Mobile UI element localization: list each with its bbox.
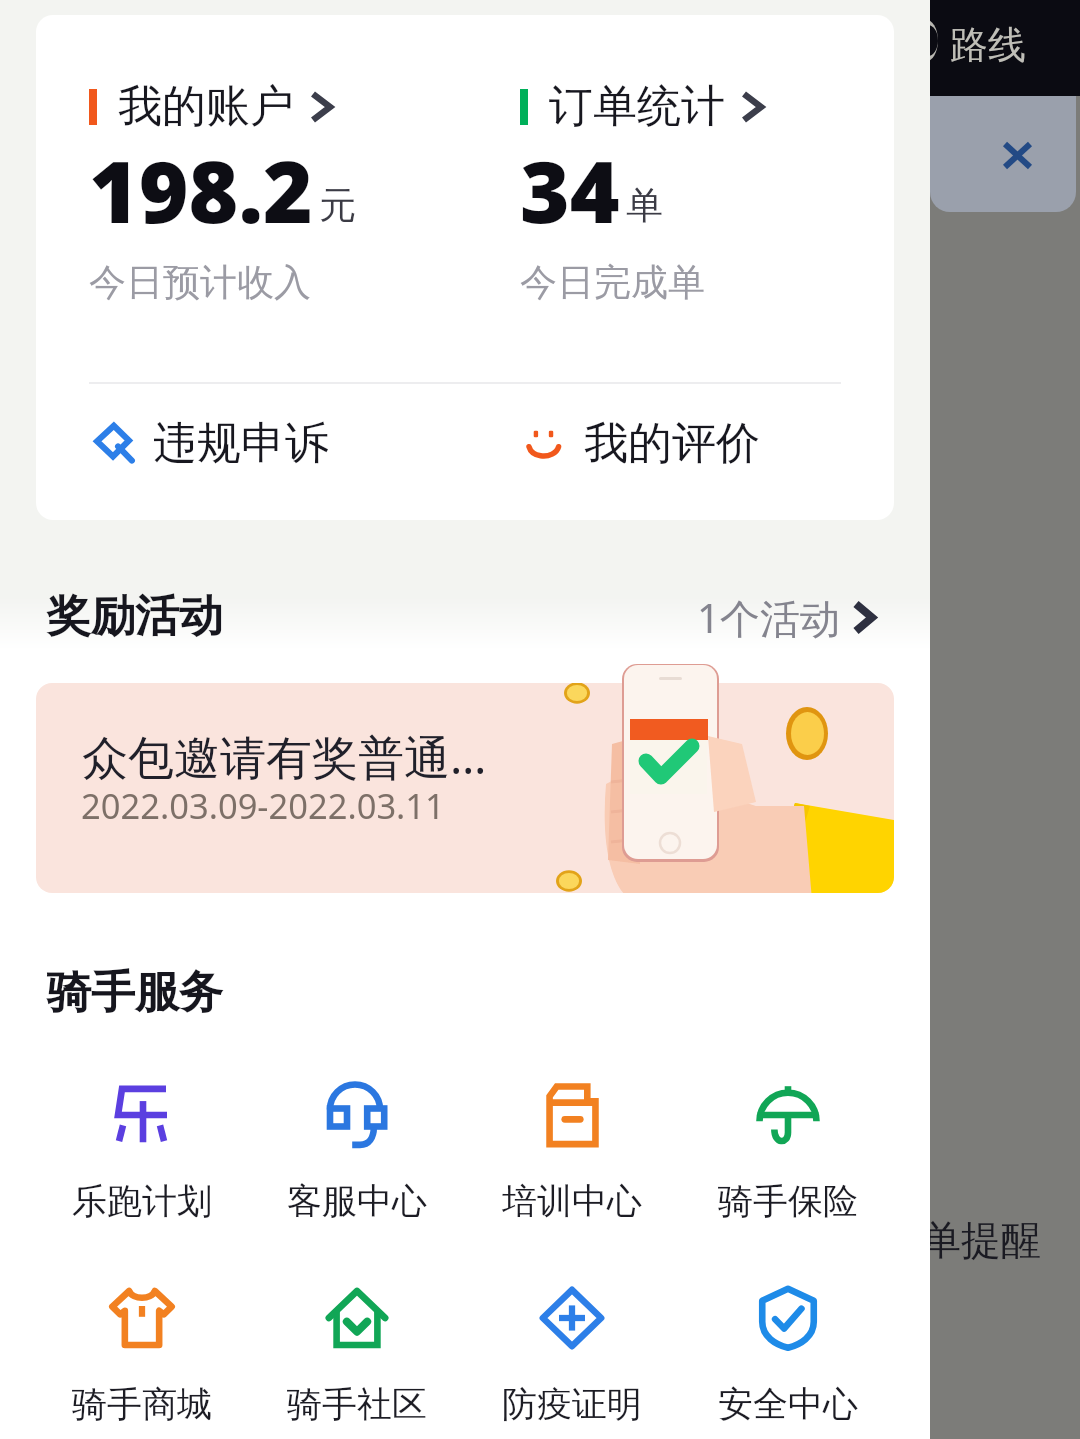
button[interactable]: 我的评价 — [523, 401, 893, 485]
staticText: 骑手保险 — [718, 1179, 858, 1223]
staticText: 骑手社区 — [287, 1382, 427, 1426]
staticText: 培训中心 — [502, 1179, 642, 1223]
button[interactable]: 客服中心 — [249, 1084, 464, 1223]
staticText: 34 — [520, 132, 620, 248]
button[interactable]: 骑手商城 — [34, 1287, 249, 1426]
button[interactable]: 防疫证明 — [464, 1287, 680, 1426]
staticText: 乐跑计划 — [72, 1179, 212, 1223]
staticText: 奖励活动 — [47, 589, 223, 644]
button[interactable]: 订单统计 — [520, 15, 894, 345]
staticText: 骑手服务 — [47, 965, 223, 1020]
staticText: 198.2 — [89, 132, 313, 248]
staticText: 1个活动 — [697, 590, 840, 645]
staticText: 我的评价 — [584, 416, 760, 471]
staticText: 违规申诉 — [153, 416, 329, 471]
staticText: 订单统计 — [549, 79, 725, 134]
button[interactable]: 骑手社区 — [249, 1287, 464, 1426]
button[interactable]: 骑手保险 — [680, 1084, 896, 1223]
staticText: 安全中心 — [718, 1382, 858, 1426]
staticText: 今日完成单 — [520, 259, 705, 306]
button[interactable]: 众包邀请有奖普通… — [36, 683, 894, 893]
button[interactable]: 1个活动 — [697, 590, 872, 645]
staticText: 我的账户 — [118, 79, 294, 134]
staticText: 2022.03.09-2022.03.11 — [81, 782, 445, 829]
staticText: 众包邀请有奖普通… — [82, 725, 487, 788]
button[interactable]: 乐跑计划 — [34, 1084, 249, 1223]
button[interactable]: 违规申诉 — [92, 401, 462, 485]
button[interactable]: 我的账户 — [89, 15, 479, 345]
staticText: 今日预计收入 — [89, 259, 311, 306]
staticText: 客服中心 — [287, 1179, 427, 1223]
staticText: 骑手商城 — [72, 1382, 212, 1426]
button[interactable]: Close — [978, 117, 1057, 194]
staticText: 防疫证明 — [502, 1382, 642, 1426]
button[interactable]: 安全中心 — [680, 1287, 896, 1426]
staticText: 单 — [626, 182, 663, 229]
button[interactable]: 培训中心 — [464, 1084, 680, 1223]
staticText: 元 — [319, 182, 356, 229]
staticText: 路线 — [950, 21, 1026, 69]
staticText: 单提醒 — [921, 1215, 1041, 1265]
